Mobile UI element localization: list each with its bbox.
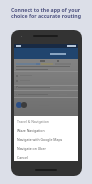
button[interactable]: Navigate with Google Maps [17,137,81,142]
button[interactable]: Navigate on Uber [17,146,81,151]
staticText: Navigate with Google Maps [17,137,63,142]
button[interactable]: Travel & Navigation [17,119,81,124]
staticText: Connect to the app of your choice for ac… [11,6,82,20]
button[interactable]: Waze Navigation [17,128,81,133]
button[interactable]: Cancel [17,155,81,160]
staticText: Navigate on Uber [17,146,46,151]
staticText: Travel & Navigation [17,119,50,124]
staticText: Waze Navigation [17,128,45,133]
staticText: Cancel [17,155,28,160]
